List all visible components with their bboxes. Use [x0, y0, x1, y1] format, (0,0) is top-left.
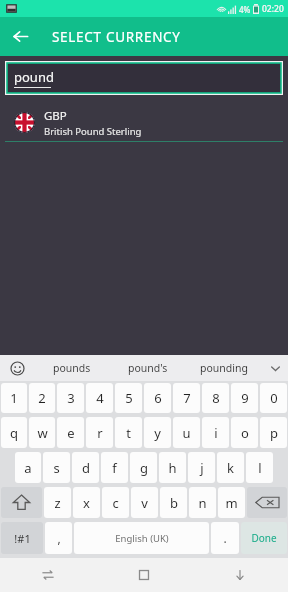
button[interactable]: n [189, 487, 216, 518]
button[interactable]: . [211, 522, 239, 554]
staticText: u [182, 424, 191, 442]
button[interactable]: 9 [231, 383, 258, 413]
button[interactable]: Done [241, 522, 287, 554]
staticText: pound's [128, 361, 168, 375]
staticText: r [97, 424, 103, 442]
staticText: p [270, 424, 278, 442]
button[interactable]: More suggestions [262, 355, 288, 381]
button[interactable]: e [57, 417, 84, 448]
staticText: g [140, 459, 148, 477]
button[interactable]: 3 [57, 383, 84, 413]
button[interactable]: 5 [115, 383, 142, 413]
staticText: 8 [212, 389, 220, 407]
button[interactable]: d [72, 452, 99, 483]
button[interactable]: Backspace [247, 487, 287, 518]
staticText: q [10, 424, 18, 442]
staticText: SELECT CURRENCY [52, 28, 181, 46]
staticText: 02:20 [262, 3, 284, 15]
staticText: e [67, 424, 75, 442]
staticText: v [141, 494, 148, 512]
button[interactable]: b [160, 487, 187, 518]
staticText: , [57, 530, 61, 546]
button[interactable]: Home [96, 558, 192, 592]
button[interactable]: p [260, 417, 287, 448]
staticText: pound [14, 68, 54, 86]
staticText: . [223, 530, 227, 546]
staticText: z [54, 494, 61, 512]
button[interactable]: f [101, 452, 128, 483]
button[interactable]: 6 [144, 383, 171, 413]
staticText: i [214, 424, 218, 442]
staticText: l [258, 459, 262, 477]
button[interactable]: x [73, 487, 100, 518]
button[interactable]: 7 [173, 383, 200, 413]
staticText: 7 [183, 389, 191, 407]
staticText: c [112, 494, 119, 512]
button[interactable]: g [130, 452, 157, 483]
staticText: 3 [67, 389, 75, 407]
staticText: n [198, 494, 207, 512]
staticText: 9 [241, 389, 249, 407]
staticText: Done [251, 531, 277, 545]
staticText: 1 [10, 389, 18, 407]
button[interactable]: Emoji [0, 355, 34, 381]
button[interactable]: !#1 [1, 522, 43, 554]
staticText: pounding [200, 361, 248, 375]
button[interactable]: pound's [110, 355, 186, 381]
button[interactable]: 0 [260, 383, 287, 413]
staticText: k [227, 459, 234, 477]
button[interactable]: 2 [29, 383, 55, 413]
button[interactable]: u [173, 417, 200, 448]
button[interactable]: a [15, 452, 41, 483]
staticText: h [168, 459, 177, 477]
staticText: m [225, 494, 238, 512]
staticText: pounds [53, 361, 91, 375]
button[interactable]: m [218, 487, 245, 518]
button[interactable]: i [202, 417, 229, 448]
button[interactable]: y [144, 417, 171, 448]
button[interactable]: w [29, 417, 55, 448]
staticText: English (UK) [115, 532, 169, 545]
button[interactable]: GBP [0, 104, 288, 141]
button[interactable]: English (UK) [74, 522, 209, 554]
staticText: 5 [125, 389, 133, 407]
button[interactable]: s [43, 452, 70, 483]
staticText: 4% [239, 4, 251, 15]
button[interactable]: q [1, 417, 27, 448]
button[interactable]: j [188, 452, 215, 483]
button[interactable]: z [44, 487, 71, 518]
button[interactable]: Back [0, 17, 40, 56]
button[interactable]: o [231, 417, 258, 448]
button[interactable]: Recents [0, 558, 96, 592]
button[interactable]: pounds [34, 355, 110, 381]
button[interactable]: Hide keyboard [192, 558, 288, 592]
button[interactable]: , [45, 522, 72, 554]
staticText: j [200, 459, 204, 477]
staticText: 4 [96, 389, 104, 407]
button[interactable]: pounding [186, 355, 262, 381]
button[interactable]: l [246, 452, 273, 483]
button[interactable]: k [217, 452, 244, 483]
button[interactable]: t [115, 417, 142, 448]
staticText: x [83, 494, 90, 512]
button[interactable]: 8 [202, 383, 229, 413]
button[interactable]: h [159, 452, 186, 483]
staticText: 0 [270, 389, 278, 407]
staticText: b [170, 494, 178, 512]
staticText: GBP [44, 108, 67, 124]
staticText: !#1 [14, 531, 31, 546]
staticText: s [53, 459, 60, 477]
staticText: o [241, 424, 249, 442]
staticText: t [126, 424, 131, 442]
button[interactable]: Shift [1, 487, 42, 518]
staticText: a [24, 459, 32, 477]
staticText: f [112, 459, 117, 477]
button[interactable]: c [102, 487, 129, 518]
button[interactable]: 4 [86, 383, 113, 413]
button[interactable]: 1 [1, 383, 27, 413]
staticText: British Pound Sterling [44, 125, 142, 138]
button[interactable]: r [86, 417, 113, 448]
button[interactable]: v [131, 487, 158, 518]
staticText: y [154, 424, 161, 442]
button[interactable]: pound [7, 63, 281, 93]
